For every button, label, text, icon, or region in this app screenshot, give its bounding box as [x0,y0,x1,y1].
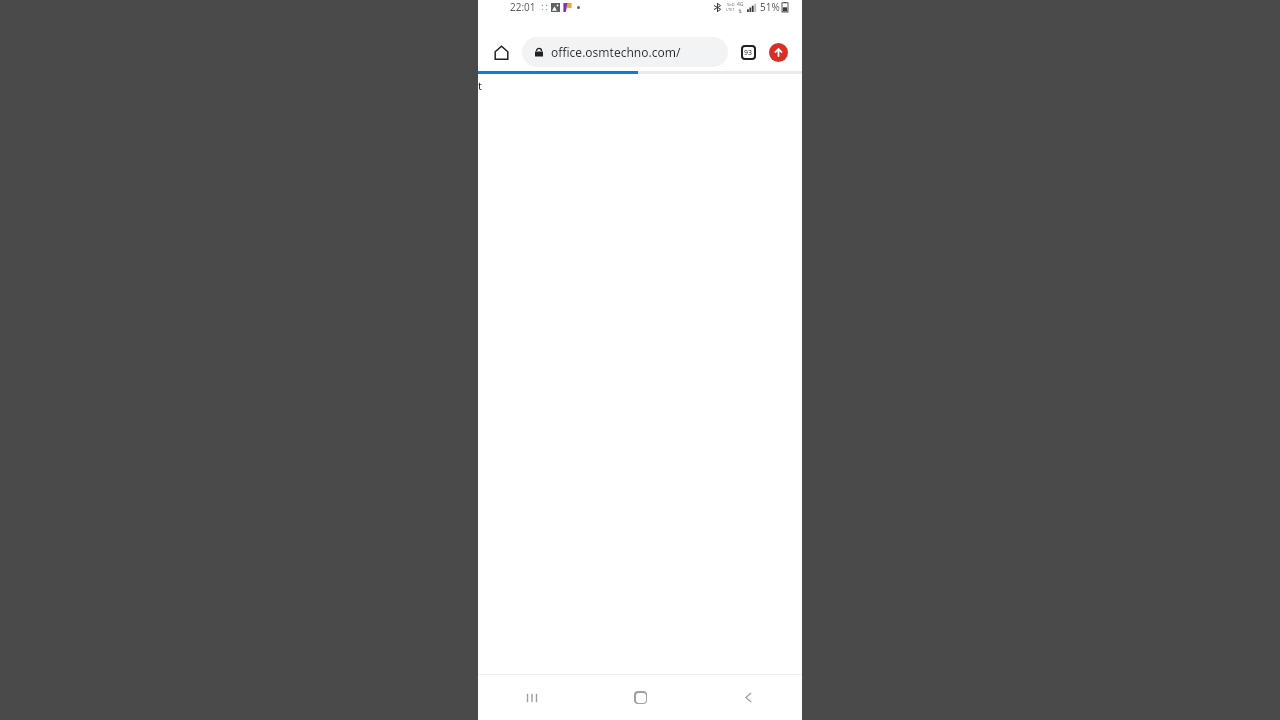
staticText: office.osmtechno.com/dashbo [551,44,718,60]
staticText: ⇅ [738,8,743,14]
button[interactable]: Account [764,38,792,66]
button[interactable]: Tabs [734,38,762,66]
staticText: 51% [760,0,780,14]
staticText: 22:01 [510,0,536,14]
button[interactable]: Recents [478,675,586,720]
staticText: LTE1 [726,7,735,12]
button[interactable]: Back [694,675,802,720]
button[interactable]: Home [586,675,694,720]
staticText: VoD [727,2,735,7]
button[interactable]: office.osmtechno.com/dashbo [522,37,728,67]
staticText: 93 [744,48,753,58]
staticText: 4G [737,1,744,8]
button[interactable]: Home [486,37,516,67]
staticText: t [478,78,482,93]
